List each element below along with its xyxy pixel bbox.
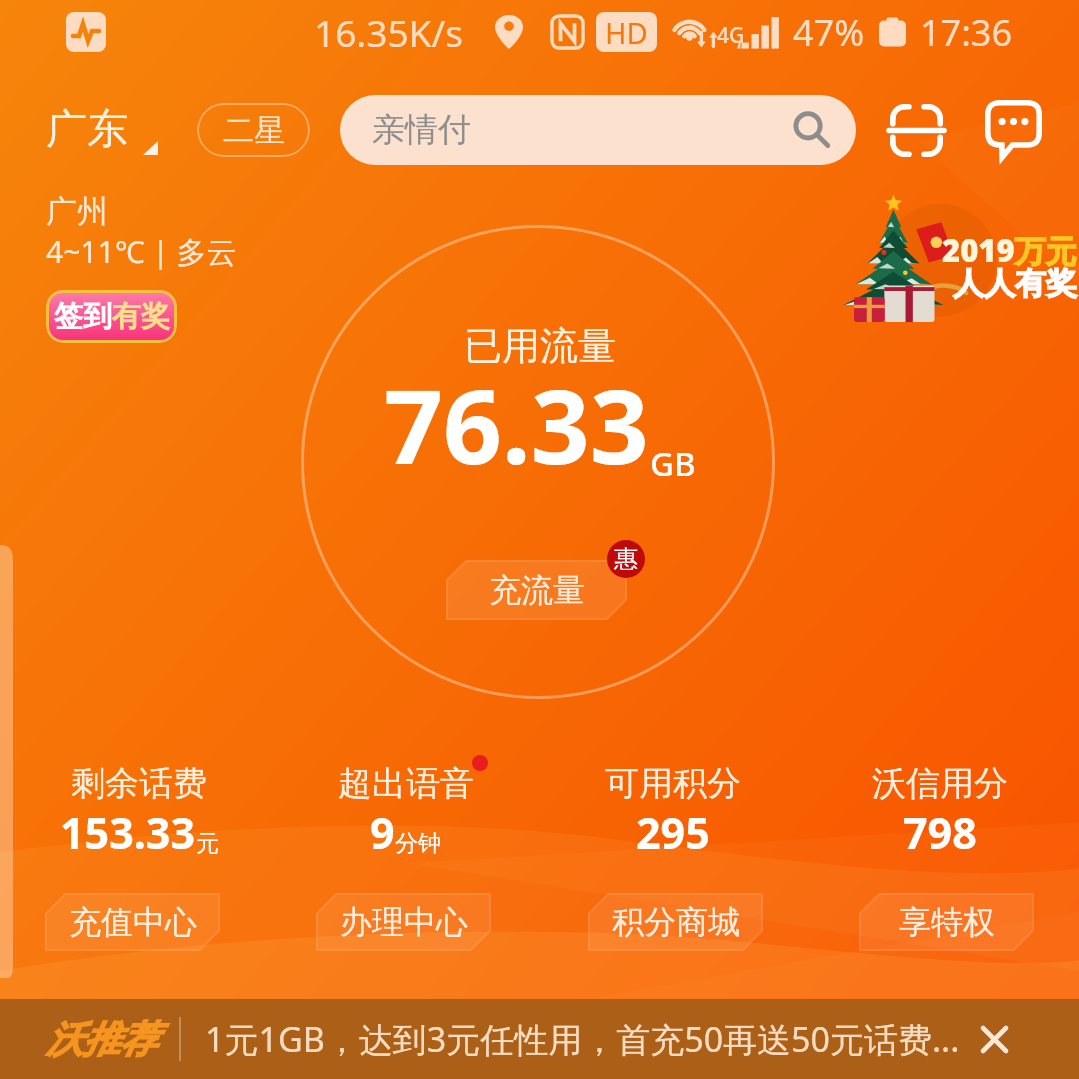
button[interactable]: 积分商城 [588,893,763,951]
button[interactable]: Close banner [971,1016,1017,1062]
staticText: 享特权 [899,902,995,942]
staticText: 人人有奖 [953,264,1077,303]
staticText: 亲情付 [372,109,471,151]
staticText: 16.35K/s [314,7,463,57]
button[interactable]: 二星 [197,103,310,157]
staticText: 充值中心 [69,902,197,942]
button[interactable]: 办理中心 [316,893,491,951]
staticText: 积分商城 [612,902,740,942]
staticText: 798 [903,803,977,862]
staticText: 可用积分 [605,762,741,805]
staticText: 沃信用分 [872,762,1008,805]
staticText: 超出语音 [338,762,474,805]
button[interactable]: Promotion: 2019 prizes for everyone [849,196,1077,324]
staticText: 二星 [223,111,285,150]
staticText: 4G [717,21,745,50]
staticText: 广州 [46,192,108,231]
button[interactable]: 超出语音 [272,762,539,864]
staticText: 分钟 [395,829,441,858]
button[interactable]: 充值中心 [45,893,220,951]
staticText: 惠 [614,544,638,574]
staticText: 2019万元 [942,229,1077,271]
button[interactable]: 可用积分 [539,762,806,864]
button[interactable]: 享特权 [859,893,1034,951]
button[interactable]: Scan code [890,104,943,157]
staticText: 4~11℃ | 多云 [46,231,237,272]
button[interactable]: 沃信用分 [806,762,1073,864]
button[interactable]: 亲情付 [340,95,856,165]
staticText: 17:36 [920,8,1013,57]
button[interactable]: 充流量 [446,560,627,620]
button[interactable]: 签到有奖 [54,298,170,335]
staticText: 9 [370,803,395,862]
staticText: 元 [196,829,219,858]
button[interactable]: 广东 [46,104,158,156]
staticText: 153.33 [60,803,196,862]
staticText: 47% [793,8,865,57]
button[interactable]: 沃推荐 [46,1016,157,1063]
staticText: 已用流量 [464,322,616,370]
staticText: 1元1GB，达到3元任性用，首充50再送50元话费... [205,1016,960,1062]
staticText: 广东 [46,104,128,156]
button[interactable]: Messages [985,100,1042,160]
staticText: 充流量 [489,570,585,610]
staticText: 剩余话费 [71,762,207,805]
staticText: GB [650,441,696,486]
staticText: 76.33 [384,354,649,494]
staticText: HD [605,13,648,52]
staticText: 295 [636,803,710,862]
button[interactable]: 剩余话费 [6,762,272,864]
staticText: 办理中心 [340,902,468,942]
